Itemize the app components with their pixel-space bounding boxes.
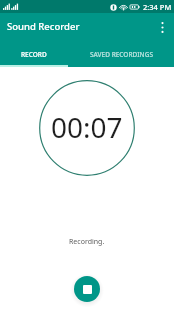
- staticText: SAVED RECORDINGS: [90, 50, 153, 59]
- button[interactable]: SAVED RECORDINGS: [68, 41, 174, 67]
- staticText: RECORD: [21, 50, 47, 59]
- staticText: 00:07: [51, 108, 123, 146]
- button[interactable]: Stop recording: [74, 276, 100, 302]
- staticText: Sound Recorder: [7, 20, 80, 33]
- staticText: Recording.: [69, 237, 105, 247]
- button[interactable]: More options: [150, 15, 174, 39]
- button[interactable]: RECORD: [0, 41, 68, 67]
- staticText: 2:34 PM: [143, 2, 172, 12]
